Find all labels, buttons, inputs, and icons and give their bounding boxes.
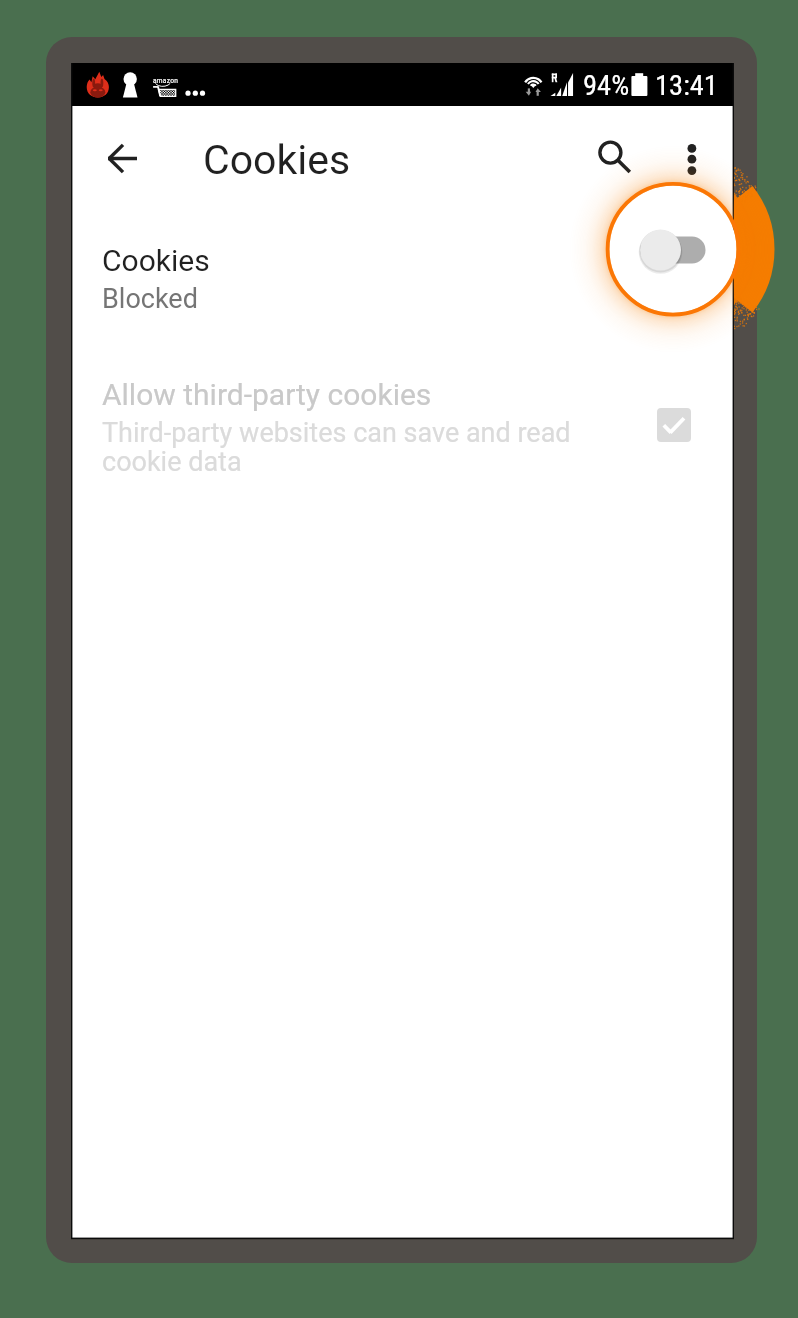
staticText: Cookies bbox=[203, 136, 351, 184]
button[interactable]: Search bbox=[584, 126, 644, 186]
staticText: Third-party websites can save and read c… bbox=[102, 417, 580, 478]
staticText: 13:41 bbox=[655, 69, 718, 102]
staticText: Cookies bbox=[102, 243, 210, 278]
button[interactable]: Navigate up bbox=[94, 129, 154, 189]
staticText: Blocked bbox=[102, 283, 198, 315]
staticText: amazon bbox=[153, 77, 179, 85]
button[interactable]: Allow third-party cookies bbox=[72, 306, 733, 446]
button[interactable]: Cookies bbox=[72, 187, 733, 297]
button[interactable]: More options bbox=[662, 133, 722, 193]
staticText: 94% bbox=[583, 69, 630, 102]
staticText: Allow third-party cookies bbox=[102, 377, 432, 412]
